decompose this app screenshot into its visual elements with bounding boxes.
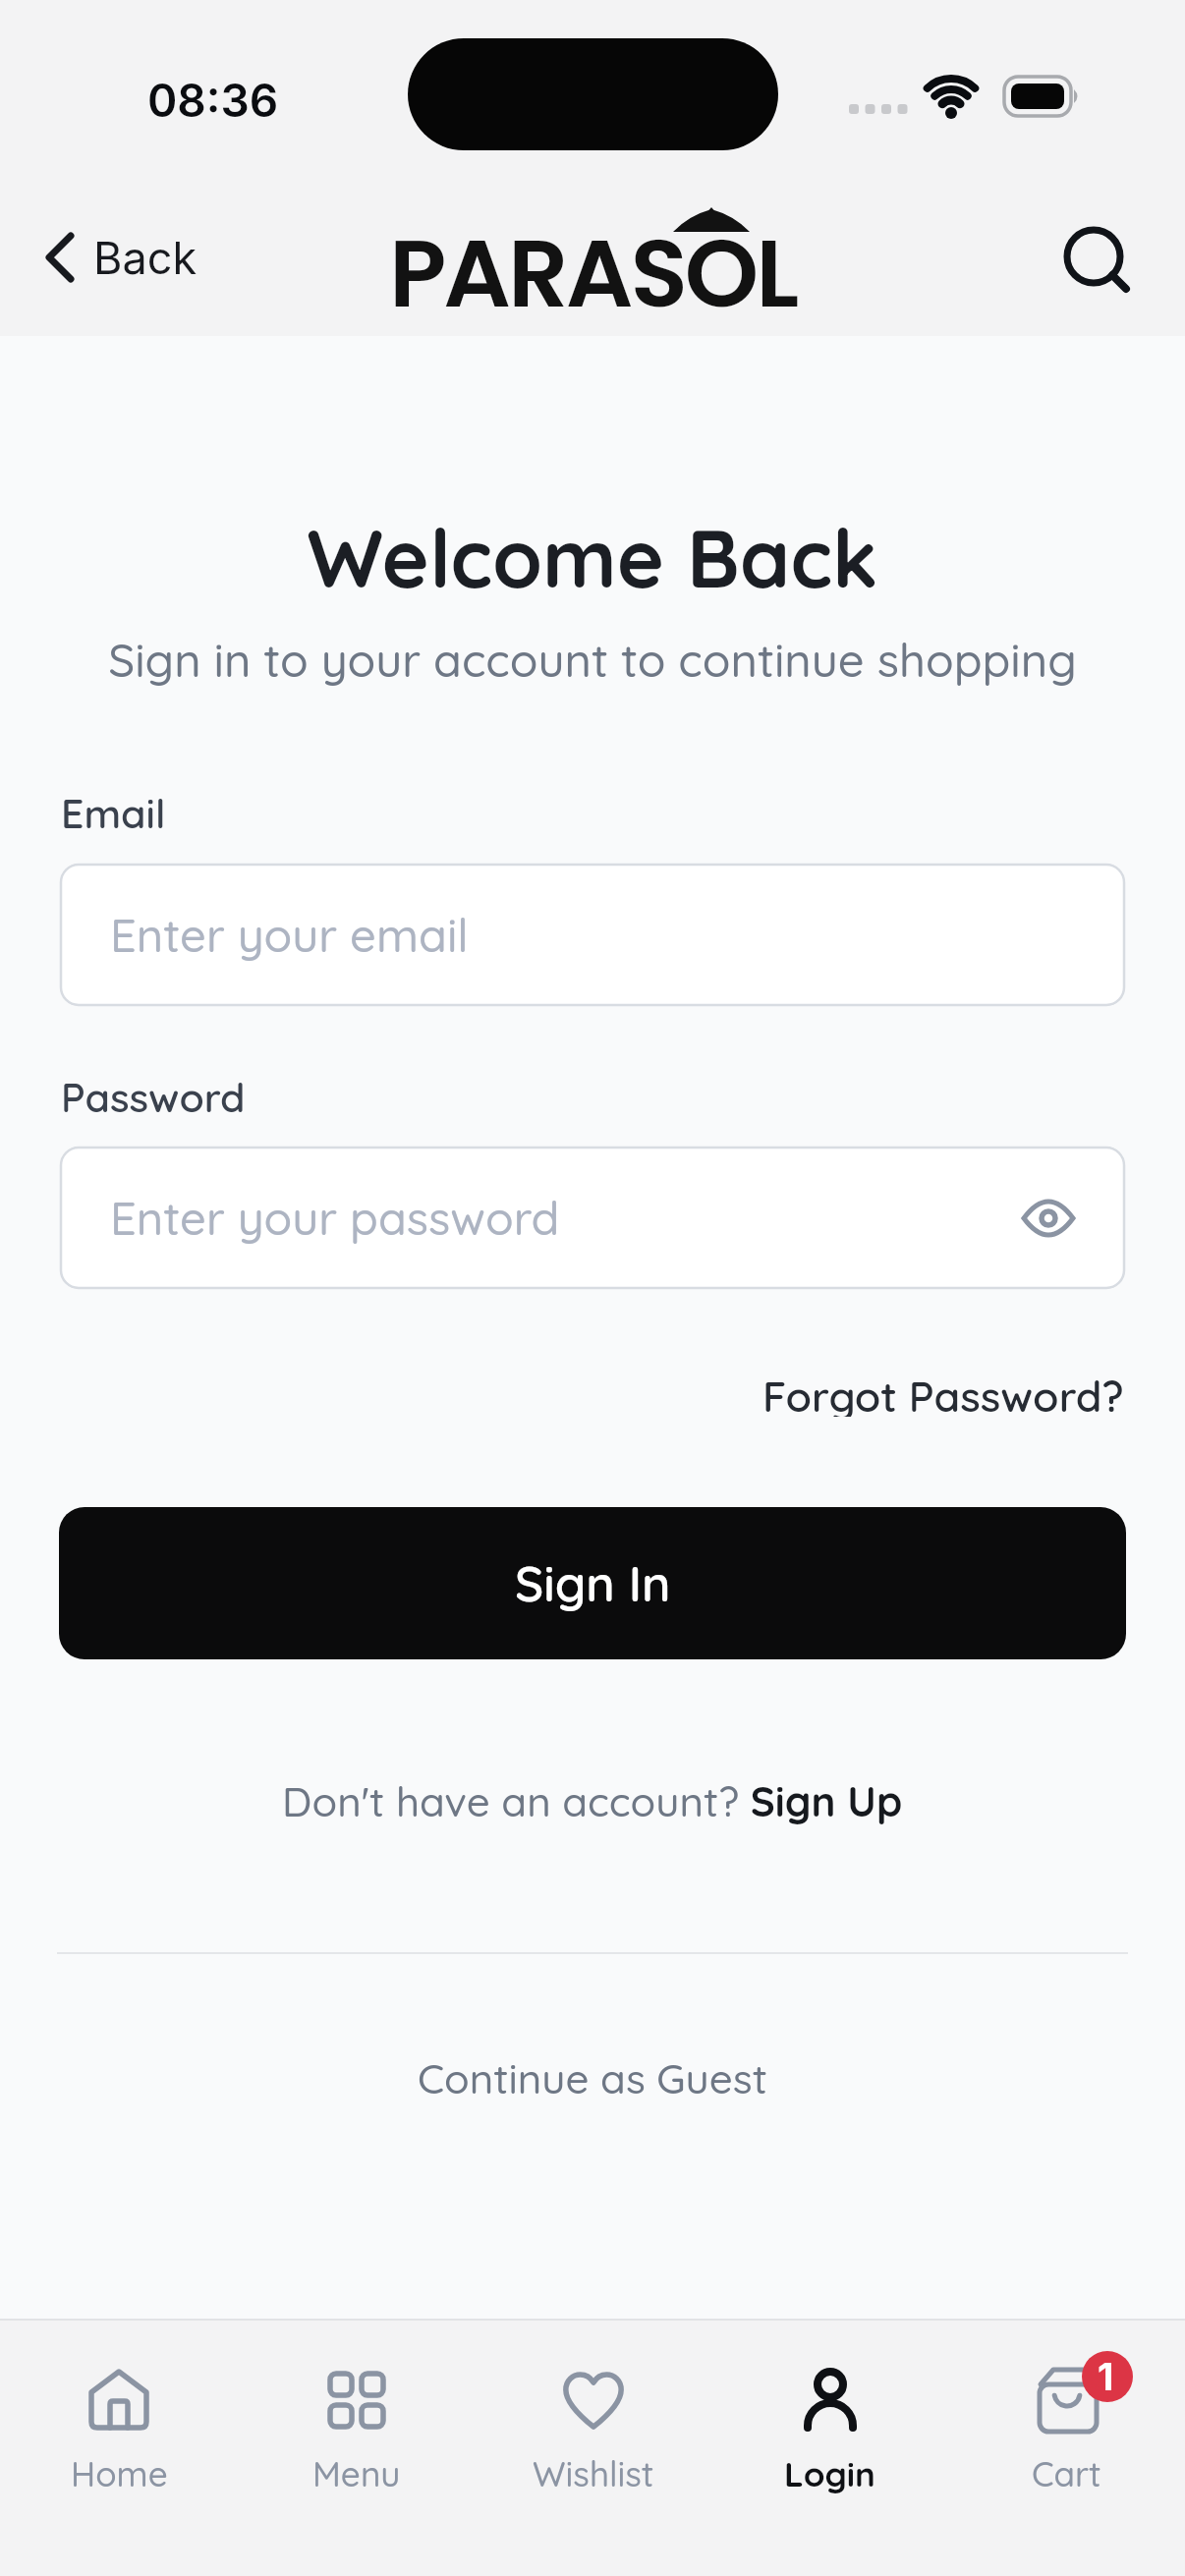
staticText: Continue as Guest [418, 2052, 767, 2103]
staticText: Welcome Back [307, 507, 878, 608]
button[interactable]: Enter your password [60, 1147, 1125, 1289]
staticText: Enter your password [110, 1189, 560, 1247]
button[interactable]: Home [0, 2321, 238, 2576]
staticText: Sign In [515, 1552, 671, 1614]
staticText: Password [61, 1072, 246, 1115]
button[interactable] [1050, 213, 1145, 308]
staticText: Wishlist [533, 2452, 654, 2495]
staticText: Sign in to your account to continue shop… [108, 631, 1077, 689]
button[interactable]: 1 [948, 2321, 1185, 2576]
staticText: 08:36 [147, 73, 279, 128]
staticText: Back [93, 231, 197, 284]
button[interactable]: Forgot Password? [762, 1370, 1124, 1417]
button[interactable]: Menu [238, 2321, 475, 2576]
staticText: 1 [1098, 2354, 1114, 2399]
staticText: Home [71, 2452, 168, 2495]
staticText: Enter your email [110, 906, 469, 964]
button[interactable]: Wishlist [475, 2321, 711, 2576]
button[interactable]: Enter your email [60, 864, 1125, 1006]
button[interactable] [1019, 1189, 1078, 1248]
button[interactable]: Continue as Guest [0, 2052, 1185, 2103]
staticText: PARASOL [389, 207, 797, 339]
button[interactable]: Login [711, 2321, 948, 2576]
staticText: Forgot Password? [762, 1370, 1124, 1417]
staticText: Login [784, 2452, 875, 2495]
staticText: Email [61, 788, 166, 831]
staticText: Cart [1032, 2452, 1101, 2495]
button[interactable]: Don't have an account? Sign Up [0, 1775, 1185, 1826]
button[interactable]: Back [29, 206, 226, 308]
button[interactable]: Sign In [59, 1507, 1126, 1659]
staticText: Menu [312, 2452, 401, 2495]
staticText: Don't have an account? Sign Up [282, 1775, 903, 1826]
